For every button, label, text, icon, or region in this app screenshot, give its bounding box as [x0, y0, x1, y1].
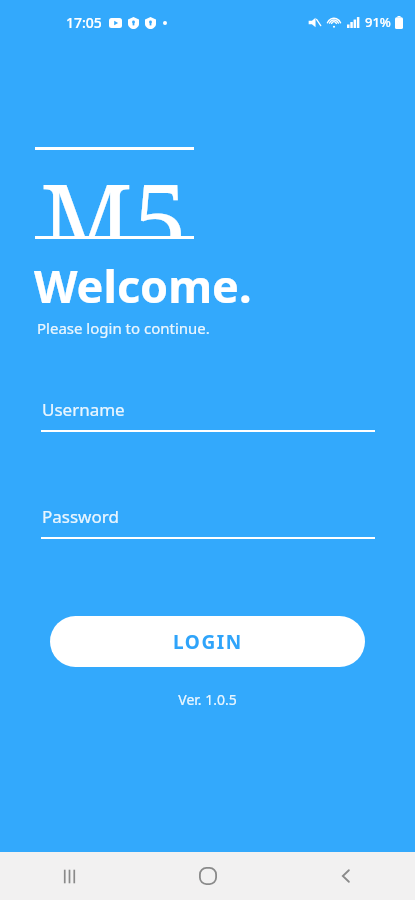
- button[interactable]: Back: [277, 852, 415, 900]
- staticText: Welcome.: [34, 255, 252, 316]
- button[interactable]: Password: [41, 505, 375, 539]
- button[interactable]: Recent apps: [0, 852, 139, 900]
- staticText: Please login to continue.: [37, 318, 210, 338]
- staticText: Username: [42, 398, 125, 421]
- button[interactable]: LOGIN: [50, 616, 365, 667]
- staticText: 91%: [365, 13, 391, 31]
- staticText: 17:05: [66, 13, 102, 32]
- staticText: Ver. 1.0.5: [0, 690, 415, 709]
- staticText: Password: [42, 505, 119, 528]
- button[interactable]: Home: [139, 852, 277, 900]
- button[interactable]: Username: [41, 398, 375, 432]
- staticText: LOGIN: [173, 629, 243, 655]
- staticText: M5: [40, 150, 189, 236]
